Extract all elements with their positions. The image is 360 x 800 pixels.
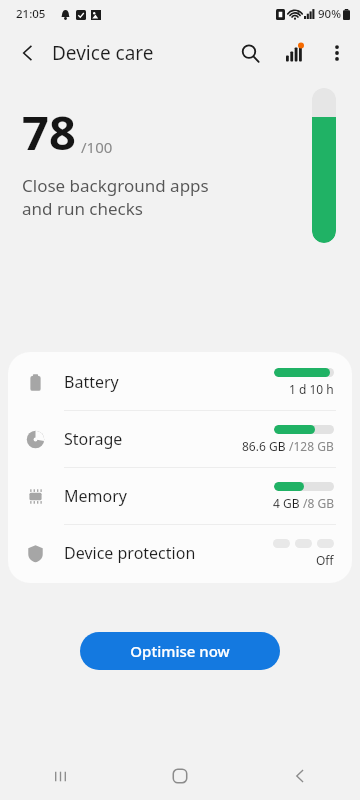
button[interactable]: Recent apps [0,752,120,800]
staticText: Device protection [64,542,196,564]
staticText: 4 GB [273,495,303,511]
staticText: /128 GB [289,438,334,454]
staticText: Battery [64,371,119,393]
button[interactable]: Battery [8,354,352,410]
staticText: 21:05 [16,6,46,22]
staticText: 90% [318,6,341,22]
button[interactable]: Home [120,752,240,800]
staticText: /8 GB [303,495,334,511]
staticText: Device care [52,40,154,66]
staticText: 86.6 GB [242,438,289,454]
staticText: 1 d 10 h [289,381,334,397]
staticText: /100 [81,137,113,157]
button[interactable]: Search [228,31,272,75]
staticText: Close background apps [22,174,209,197]
button[interactable]: Memory [8,468,352,524]
staticText: Off [316,552,334,568]
button[interactable]: Back [6,31,50,75]
button[interactable]: More options [316,31,358,75]
button[interactable]: Device protection [8,525,352,581]
button[interactable]: Optimise now [80,632,280,670]
button[interactable]: Back [240,752,360,800]
button[interactable]: Usage statistics [272,31,316,75]
button[interactable]: Storage [8,411,352,467]
staticText: and run checks [22,197,144,220]
staticText: Memory [64,485,127,507]
staticText: Storage [64,428,123,450]
staticText: Optimise now [130,641,230,661]
staticText: 78 [22,100,76,164]
